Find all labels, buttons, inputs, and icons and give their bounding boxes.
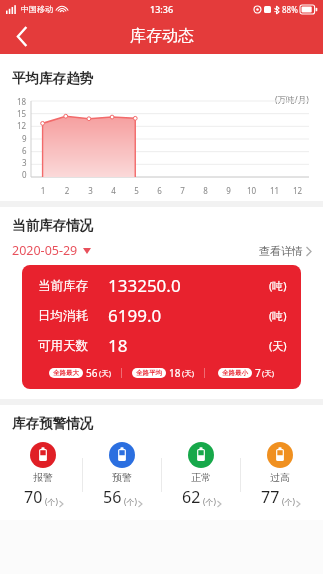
staticText: 10	[240, 185, 263, 196]
staticText: 3	[79, 185, 102, 196]
button[interactable]: 预警	[83, 438, 161, 512]
button[interactable]: 过高	[241, 438, 319, 512]
staticText: 62	[182, 486, 201, 508]
staticText: 15	[17, 108, 27, 119]
staticText: 70	[24, 486, 43, 508]
staticText: 日均消耗	[38, 308, 88, 324]
staticText: 11	[263, 185, 286, 196]
staticText: 库存动态	[130, 26, 194, 46]
staticText: 2020-05-29	[12, 242, 78, 259]
staticText: 6	[148, 185, 171, 196]
staticText: 2	[55, 185, 79, 196]
staticText: 可用天数	[38, 338, 88, 354]
staticText: 5	[125, 185, 148, 196]
button[interactable]: Back	[0, 18, 44, 54]
staticText: 全路最大	[53, 369, 79, 377]
staticText: (个)	[203, 496, 216, 507]
staticText: 过高	[270, 471, 290, 484]
staticText: 4	[102, 185, 125, 196]
staticText: 13:36	[150, 3, 174, 15]
staticText: 全路平均	[136, 369, 162, 377]
staticText: (天)	[269, 338, 287, 353]
staticText: (天)	[99, 368, 111, 378]
staticText: 18	[17, 96, 27, 107]
staticText: 12	[17, 120, 27, 131]
staticText: 当前库存情况	[12, 217, 93, 234]
staticText: 6	[22, 145, 27, 156]
staticText: 56	[86, 366, 98, 380]
staticText: 0	[22, 169, 27, 180]
staticText: 预警	[112, 471, 132, 484]
staticText: (天)	[262, 368, 274, 378]
staticText: 9	[217, 185, 240, 196]
staticText: 平均库存趋势	[12, 70, 93, 87]
staticText: 查看详情	[259, 244, 303, 258]
staticText: (万吨/月)	[275, 94, 309, 106]
staticText: 18	[169, 366, 181, 380]
button[interactable]: 报警	[4, 438, 82, 512]
staticText: 18	[108, 334, 128, 357]
button[interactable]: 查看详情	[259, 244, 311, 258]
staticText: 7	[171, 185, 194, 196]
staticText: 88%	[282, 4, 298, 15]
staticText: 报警	[33, 471, 53, 484]
staticText: 全路最小	[222, 369, 248, 377]
staticText: 12	[286, 185, 309, 196]
staticText: 9	[22, 133, 27, 144]
staticText: (吨)	[269, 278, 287, 293]
staticText: (天)	[182, 368, 194, 378]
staticText: 正常	[191, 471, 211, 484]
staticText: 7	[255, 366, 261, 380]
staticText: (个)	[45, 496, 58, 507]
staticText: 当前库存	[38, 278, 88, 294]
staticText: 1	[31, 185, 55, 196]
staticText: 中国移动	[21, 4, 53, 14]
staticText: (吨)	[269, 308, 287, 323]
button[interactable]: 2020-05-29	[12, 242, 91, 259]
staticText: 77	[261, 486, 280, 508]
staticText: 8	[194, 185, 217, 196]
staticText: 133250.0	[108, 274, 181, 297]
button[interactable]: 正常	[162, 438, 240, 512]
staticText: (个)	[124, 496, 137, 507]
staticText: (个)	[282, 496, 295, 507]
staticText: 库存预警情况	[12, 415, 93, 432]
staticText: 6199.0	[108, 304, 162, 327]
staticText: 56	[103, 486, 122, 508]
staticText: 3	[22, 157, 27, 168]
